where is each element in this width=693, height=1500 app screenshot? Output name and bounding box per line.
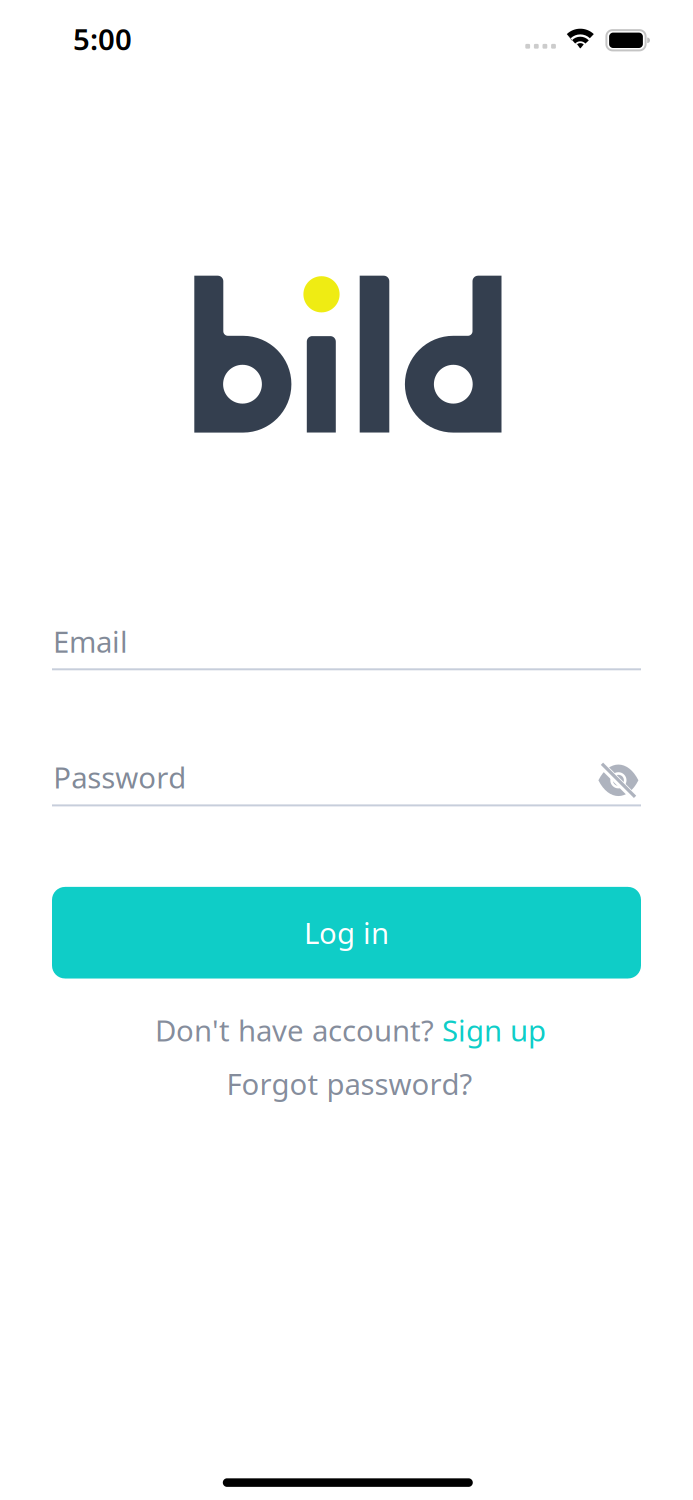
button[interactable]: Forgot password?	[209, 1065, 489, 1101]
staticText: Forgot password?	[226, 1064, 472, 1103]
button[interactable]: Log in	[52, 887, 641, 978]
staticText: 5:00	[73, 19, 132, 58]
button[interactable]: Show password	[592, 757, 644, 803]
staticText: Don't have account?	[155, 1010, 442, 1049]
staticText: Password	[53, 758, 186, 797]
button[interactable]: Sign up	[442, 1010, 546, 1049]
staticText: Email	[53, 622, 128, 661]
staticText: Sign up	[442, 1010, 546, 1049]
staticText: Log in	[304, 913, 389, 952]
